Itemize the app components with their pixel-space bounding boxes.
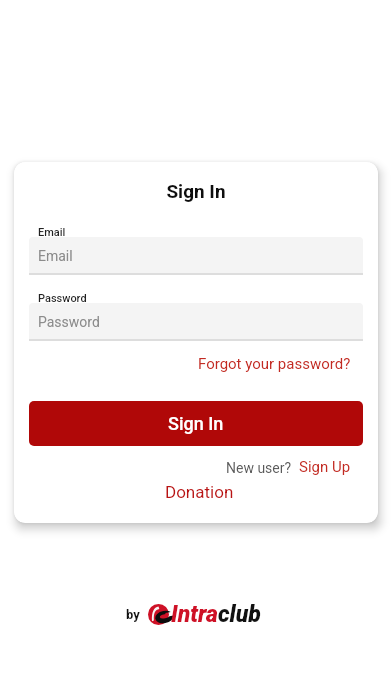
button[interactable]: Forgot your password? [198, 349, 351, 379]
staticText: New user? [226, 460, 292, 476]
staticText: Email [38, 248, 73, 264]
staticText: Password [38, 292, 87, 305]
staticText: Sign In [14, 180, 378, 202]
staticText: Donation [165, 482, 234, 502]
staticText: Sign In [168, 413, 224, 434]
staticText: by [126, 607, 140, 622]
button[interactable]: Sign Up [299, 458, 351, 476]
button[interactable]: Password [29, 303, 363, 339]
staticText: Password [38, 314, 100, 330]
button[interactable]: Donation [14, 476, 378, 508]
staticText: club [218, 601, 261, 628]
other: Intraclub logo [148, 604, 169, 625]
staticText: Sign Up [299, 458, 351, 476]
button[interactable]: Email [29, 237, 363, 273]
button[interactable]: Sign In [29, 401, 363, 446]
staticText: Email [38, 226, 66, 239]
staticText: Forgot your password? [198, 355, 351, 373]
staticText: Intra [171, 601, 218, 628]
